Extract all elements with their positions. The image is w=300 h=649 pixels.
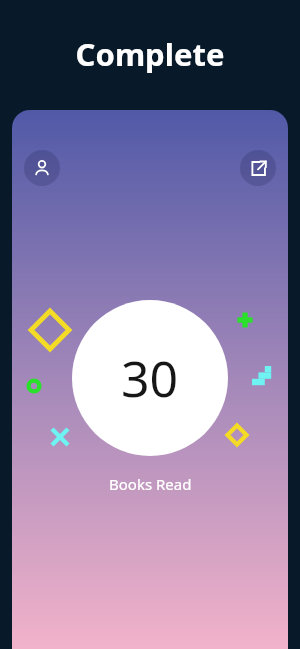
button[interactable]: Profile [24,150,60,186]
button[interactable]: Share [240,150,276,186]
staticText: Books Read [109,474,192,494]
staticText: 30 [121,344,179,412]
staticText: Complete [0,33,300,75]
